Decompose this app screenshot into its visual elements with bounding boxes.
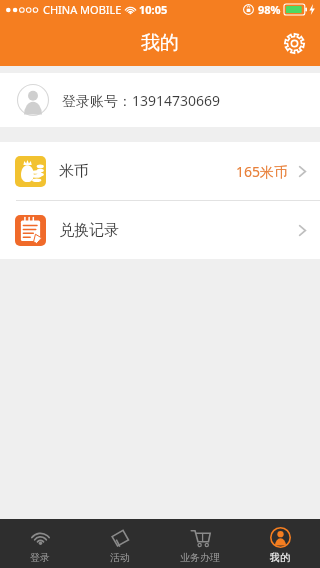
staticText: 登录账号：13914730669 [62,91,221,110]
staticText: 兑换记录 [59,221,119,240]
button[interactable]: 米币 [0,142,320,200]
staticText: 我的 [141,31,179,55]
button[interactable]: 业务办理 [160,519,240,568]
staticText: CHINA MOBILE [43,2,122,17]
button[interactable]: 我的 [240,519,320,568]
staticText: 98% [258,2,281,17]
staticText: 我的 [270,551,290,564]
button[interactable]: 活动 [80,519,160,568]
button[interactable]: 兑换记录 [0,201,320,259]
staticText: 米币 [59,162,89,181]
staticText: 登录 [30,551,50,564]
staticText: 165米币 [236,162,289,181]
button[interactable]: 登录 [0,519,80,568]
staticText: 活动 [110,551,130,564]
button[interactable]: 登录账号：13914730669 [0,73,320,127]
button[interactable]: Settings [274,23,314,63]
staticText: 10:05 [139,2,168,17]
staticText: 业务办理 [180,551,220,564]
